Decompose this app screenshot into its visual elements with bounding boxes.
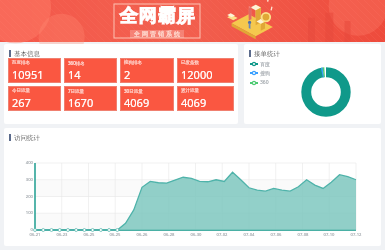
staticText: 今日流量 <box>12 88 30 94</box>
button[interactable]: 接单统计 donut chart <box>300 66 352 118</box>
staticText: 07-06 <box>267 232 285 238</box>
staticText: 基本信息 <box>14 50 40 58</box>
staticText: 0 <box>18 227 33 233</box>
staticText: 访问统计 <box>14 134 40 142</box>
staticText: 300 <box>18 177 33 183</box>
button[interactable]: 搜狗 <box>250 70 270 76</box>
staticText: 14 <box>68 67 81 82</box>
staticText: 100 <box>18 210 33 216</box>
staticText: 累计流量 <box>181 88 199 94</box>
button[interactable]: 全网霸屏 banner <box>0 0 385 42</box>
staticText: 07-02 <box>213 232 231 238</box>
staticText: 4069 <box>124 95 150 110</box>
staticText: 200 <box>18 194 33 200</box>
button[interactable]: 360 <box>250 79 269 86</box>
staticText: 接单统计 <box>254 50 280 58</box>
button[interactable]: 访问统计 area chart <box>4 128 381 246</box>
staticText: 06-21 <box>26 232 44 238</box>
staticText: 搜狗 <box>260 70 270 76</box>
button[interactable]: 已发条数 <box>178 59 233 82</box>
staticText: 06-25 <box>80 232 98 238</box>
staticText: 07-04 <box>240 232 258 238</box>
staticText: 4069 <box>181 95 207 110</box>
staticText: 10951 <box>12 67 44 82</box>
staticText: 百度排名 <box>12 60 30 66</box>
button[interactable]: 今日流量 <box>9 87 60 110</box>
staticText: 07-12 <box>347 232 365 238</box>
staticText: 7日流量 <box>68 88 85 94</box>
staticText: 06-23 <box>53 232 71 238</box>
button[interactable]: 7日流量 <box>65 87 116 110</box>
staticText: 2 <box>124 67 131 82</box>
staticText: 搜狗排名 <box>124 60 142 66</box>
button[interactable]: 累计流量 <box>178 87 233 110</box>
staticText: 1670 <box>68 95 94 110</box>
staticText: 30日流量 <box>124 88 143 94</box>
staticText: 全网营销系统 <box>133 30 181 38</box>
button[interactable]: 360排名 <box>65 59 116 82</box>
staticText: 已发条数 <box>181 60 199 66</box>
button[interactable]: 搜狗排名 <box>121 59 173 82</box>
staticText: 07-08 <box>294 232 312 238</box>
button[interactable]: 百度排名 <box>9 59 60 82</box>
staticText: 06-30 <box>187 232 205 238</box>
staticText: 07-10 <box>320 232 338 238</box>
button[interactable]: 百度 <box>250 61 270 67</box>
button[interactable]: 30日流量 <box>121 87 173 110</box>
staticText: 百度 <box>260 61 270 67</box>
staticText: 400 <box>18 160 33 166</box>
staticText: 12000 <box>181 67 213 82</box>
staticText: 360 <box>260 79 269 86</box>
staticText: 06-25 <box>106 232 124 238</box>
staticText: 360排名 <box>68 60 85 66</box>
staticText: 全网霸屏 <box>119 5 195 28</box>
staticText: 267 <box>12 95 31 110</box>
staticText: 06-26 <box>133 232 151 238</box>
staticText: 06-28 <box>160 232 178 238</box>
